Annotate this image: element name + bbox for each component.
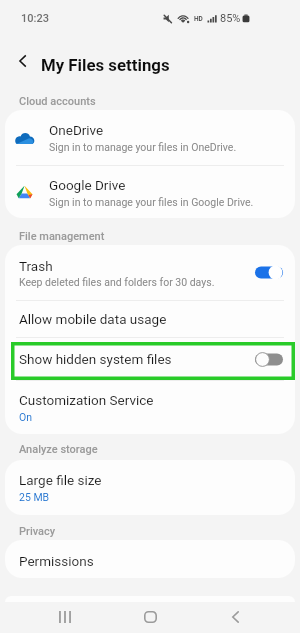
staticText: Customization Service xyxy=(19,392,154,408)
staticText: Show hidden system files xyxy=(19,351,172,367)
staticText: 85% xyxy=(220,12,241,25)
staticText: 25 MB xyxy=(19,491,50,503)
staticText: 10:23 xyxy=(21,12,49,25)
button[interactable]: Trash xyxy=(5,245,295,300)
staticText: Keep deleted files and folders for 30 da… xyxy=(19,276,215,288)
staticText: File management xyxy=(19,230,105,243)
staticText: HD xyxy=(194,15,203,23)
staticText: OneDrive xyxy=(49,122,104,138)
staticText: Sign in to manage your files in Google D… xyxy=(49,196,254,208)
staticText: Analyze storage xyxy=(19,443,98,456)
button[interactable]: Back xyxy=(215,600,255,633)
staticText: On xyxy=(19,411,33,423)
staticText: Trash xyxy=(19,258,53,274)
button[interactable]: Large file size xyxy=(5,460,295,515)
staticText: Sign in to manage your files in OneDrive… xyxy=(49,141,237,153)
button[interactable]: OneDrive xyxy=(5,110,295,165)
button[interactable]: Toggle on xyxy=(255,265,283,280)
button[interactable]: Google Drive xyxy=(5,166,295,218)
staticText: Large file size xyxy=(19,472,102,488)
button[interactable]: Toggle off xyxy=(255,352,283,367)
staticText: Google Drive xyxy=(49,177,126,193)
staticText: Privacy xyxy=(19,525,56,538)
button[interactable]: Permissions xyxy=(5,544,295,578)
staticText: Allow mobile data usage xyxy=(19,311,167,327)
button[interactable]: Allow mobile data usage xyxy=(5,301,295,337)
button[interactable]: Back xyxy=(6,44,40,78)
staticText: Permissions xyxy=(19,553,94,569)
button[interactable]: Customization Service xyxy=(5,381,295,434)
button[interactable]: Home xyxy=(130,600,170,633)
staticText: Cloud accounts xyxy=(19,95,96,108)
staticText: My Files settings xyxy=(41,55,170,75)
button[interactable]: Recent apps xyxy=(45,600,85,633)
button[interactable]: Show hidden system files xyxy=(5,338,295,380)
